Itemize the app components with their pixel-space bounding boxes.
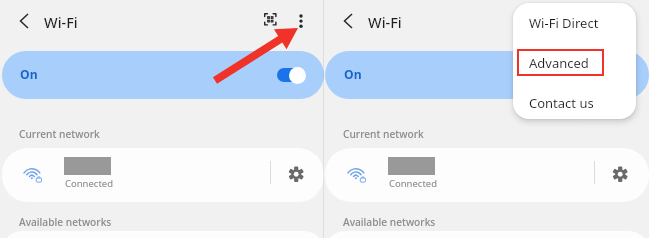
staticText: Available networks (19, 215, 112, 229)
button[interactable]: Contact us (513, 83, 636, 119)
button[interactable]: Wi-Fi network settings (610, 164, 631, 185)
button[interactable]: On (325, 51, 649, 99)
staticText: On (344, 66, 362, 83)
staticText: Wi-Fi (44, 12, 78, 32)
button[interactable]: Scan QR code (260, 9, 282, 31)
button[interactable]: Connected (2, 148, 324, 202)
staticText: Contact us (529, 94, 594, 112)
button[interactable]: Back (340, 12, 358, 30)
button[interactable]: On (2, 51, 324, 99)
button[interactable]: Wi-Fi network settings (286, 164, 307, 185)
button[interactable]: Scan QR code (584, 9, 606, 31)
button[interactable]: More options (292, 13, 310, 31)
staticText: On (20, 66, 38, 83)
button[interactable]: Connected (325, 148, 649, 202)
staticText: Current network (343, 127, 424, 141)
staticText: Current network (19, 127, 100, 141)
staticText: Connected (65, 177, 114, 190)
staticText: Connected (389, 177, 438, 190)
staticText: Available networks (343, 215, 436, 229)
staticText: Advanced (529, 54, 589, 72)
staticText: Wi-Fi Direct (529, 14, 599, 32)
button[interactable]: Back (16, 12, 34, 30)
staticText: Wi-Fi (368, 12, 402, 32)
button[interactable]: Wi-Fi Direct (513, 3, 636, 43)
button[interactable]: Advanced (513, 43, 636, 83)
